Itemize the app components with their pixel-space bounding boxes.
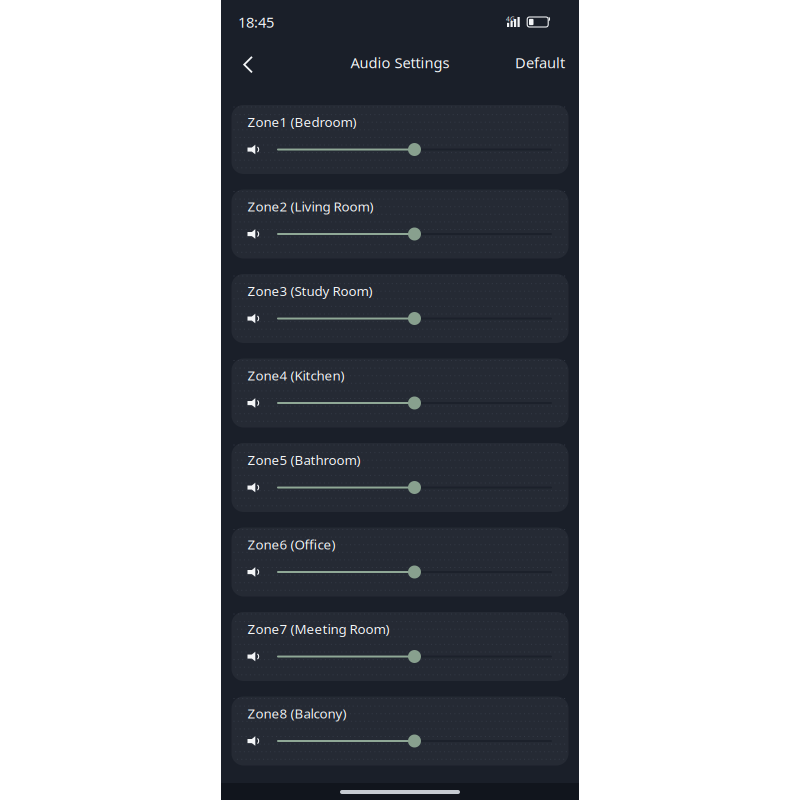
button[interactable]: Zone3 (Study Room) [231, 274, 568, 343]
staticText: Zone1 (Bedroom) [247, 113, 356, 131]
button[interactable]: Mute Zone2 (Living Room) [247, 229, 260, 239]
staticText: Audio Settings [350, 53, 449, 72]
button[interactable]: Zone1 (Bedroom) [231, 105, 568, 174]
button[interactable]: Zone2 (Living Room) [231, 189, 568, 258]
staticText: Zone8 (Balcony) [247, 704, 346, 722]
button[interactable]: Zone8 (Balcony) [231, 696, 568, 765]
staticText: Zone6 (Office) [247, 535, 335, 553]
button[interactable]: Zone3 (Study Room) volume [277, 312, 552, 325]
button[interactable]: Mute Zone4 (Kitchen) [247, 398, 260, 408]
staticText: Zone4 (Kitchen) [247, 366, 344, 384]
button[interactable]: Zone2 (Living Room) volume [277, 227, 552, 240]
button[interactable]: Zone1 (Bedroom) volume [277, 143, 552, 156]
button[interactable]: Zone4 (Kitchen) [231, 358, 568, 427]
button[interactable]: Zone6 (Office) volume [277, 565, 552, 578]
button[interactable]: Back [232, 42, 264, 83]
button[interactable]: Zone4 (Kitchen) volume [277, 396, 552, 409]
button[interactable]: Zone7 (Meeting Room) [231, 612, 568, 681]
button[interactable]: Zone5 (Bathroom) volume [277, 481, 552, 494]
button[interactable]: Mute Zone6 (Office) [247, 567, 260, 577]
staticText: Default [515, 53, 565, 72]
button[interactable]: Mute Zone7 (Meeting Room) [247, 652, 260, 661]
button[interactable]: Mute Zone3 (Study Room) [247, 314, 260, 323]
button[interactable]: Zone5 (Bathroom) [231, 443, 568, 512]
staticText: 18:45 [238, 12, 274, 32]
button[interactable]: Default [508, 41, 572, 84]
staticText: Zone5 (Bathroom) [247, 451, 360, 469]
staticText: Zone7 (Meeting Room) [247, 620, 389, 638]
button[interactable]: Zone7 (Meeting Room) volume [277, 650, 552, 663]
button[interactable]: Zone6 (Office) [231, 527, 568, 596]
button[interactable]: Zone8 (Balcony) volume [277, 734, 552, 747]
button[interactable]: Mute Zone8 (Balcony) [247, 736, 260, 746]
staticText: 4G [506, 14, 515, 23]
button[interactable]: Mute Zone1 (Bedroom) [247, 145, 260, 154]
button[interactable]: Mute Zone5 (Bathroom) [247, 483, 260, 492]
staticText: Zone3 (Study Room) [247, 282, 372, 300]
staticText: Zone2 (Living Room) [247, 197, 373, 215]
